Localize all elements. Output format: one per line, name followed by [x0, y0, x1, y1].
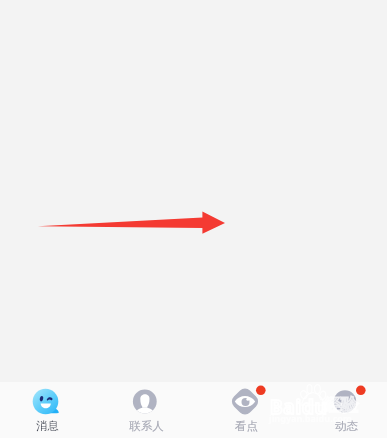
button[interactable]: 看点: [204, 382, 288, 438]
button[interactable]: 联系人: [104, 382, 188, 438]
staticText: jingyan.baidu.com: [269, 412, 352, 424]
staticText: 看点: [235, 419, 258, 433]
button[interactable]: 动态: [304, 382, 387, 438]
staticText: 经验: [324, 395, 358, 416]
staticText: 消息: [36, 419, 59, 433]
button[interactable]: 消息: [5, 382, 89, 438]
staticText: 动态: [335, 419, 358, 433]
staticText: 联系人: [129, 419, 164, 433]
